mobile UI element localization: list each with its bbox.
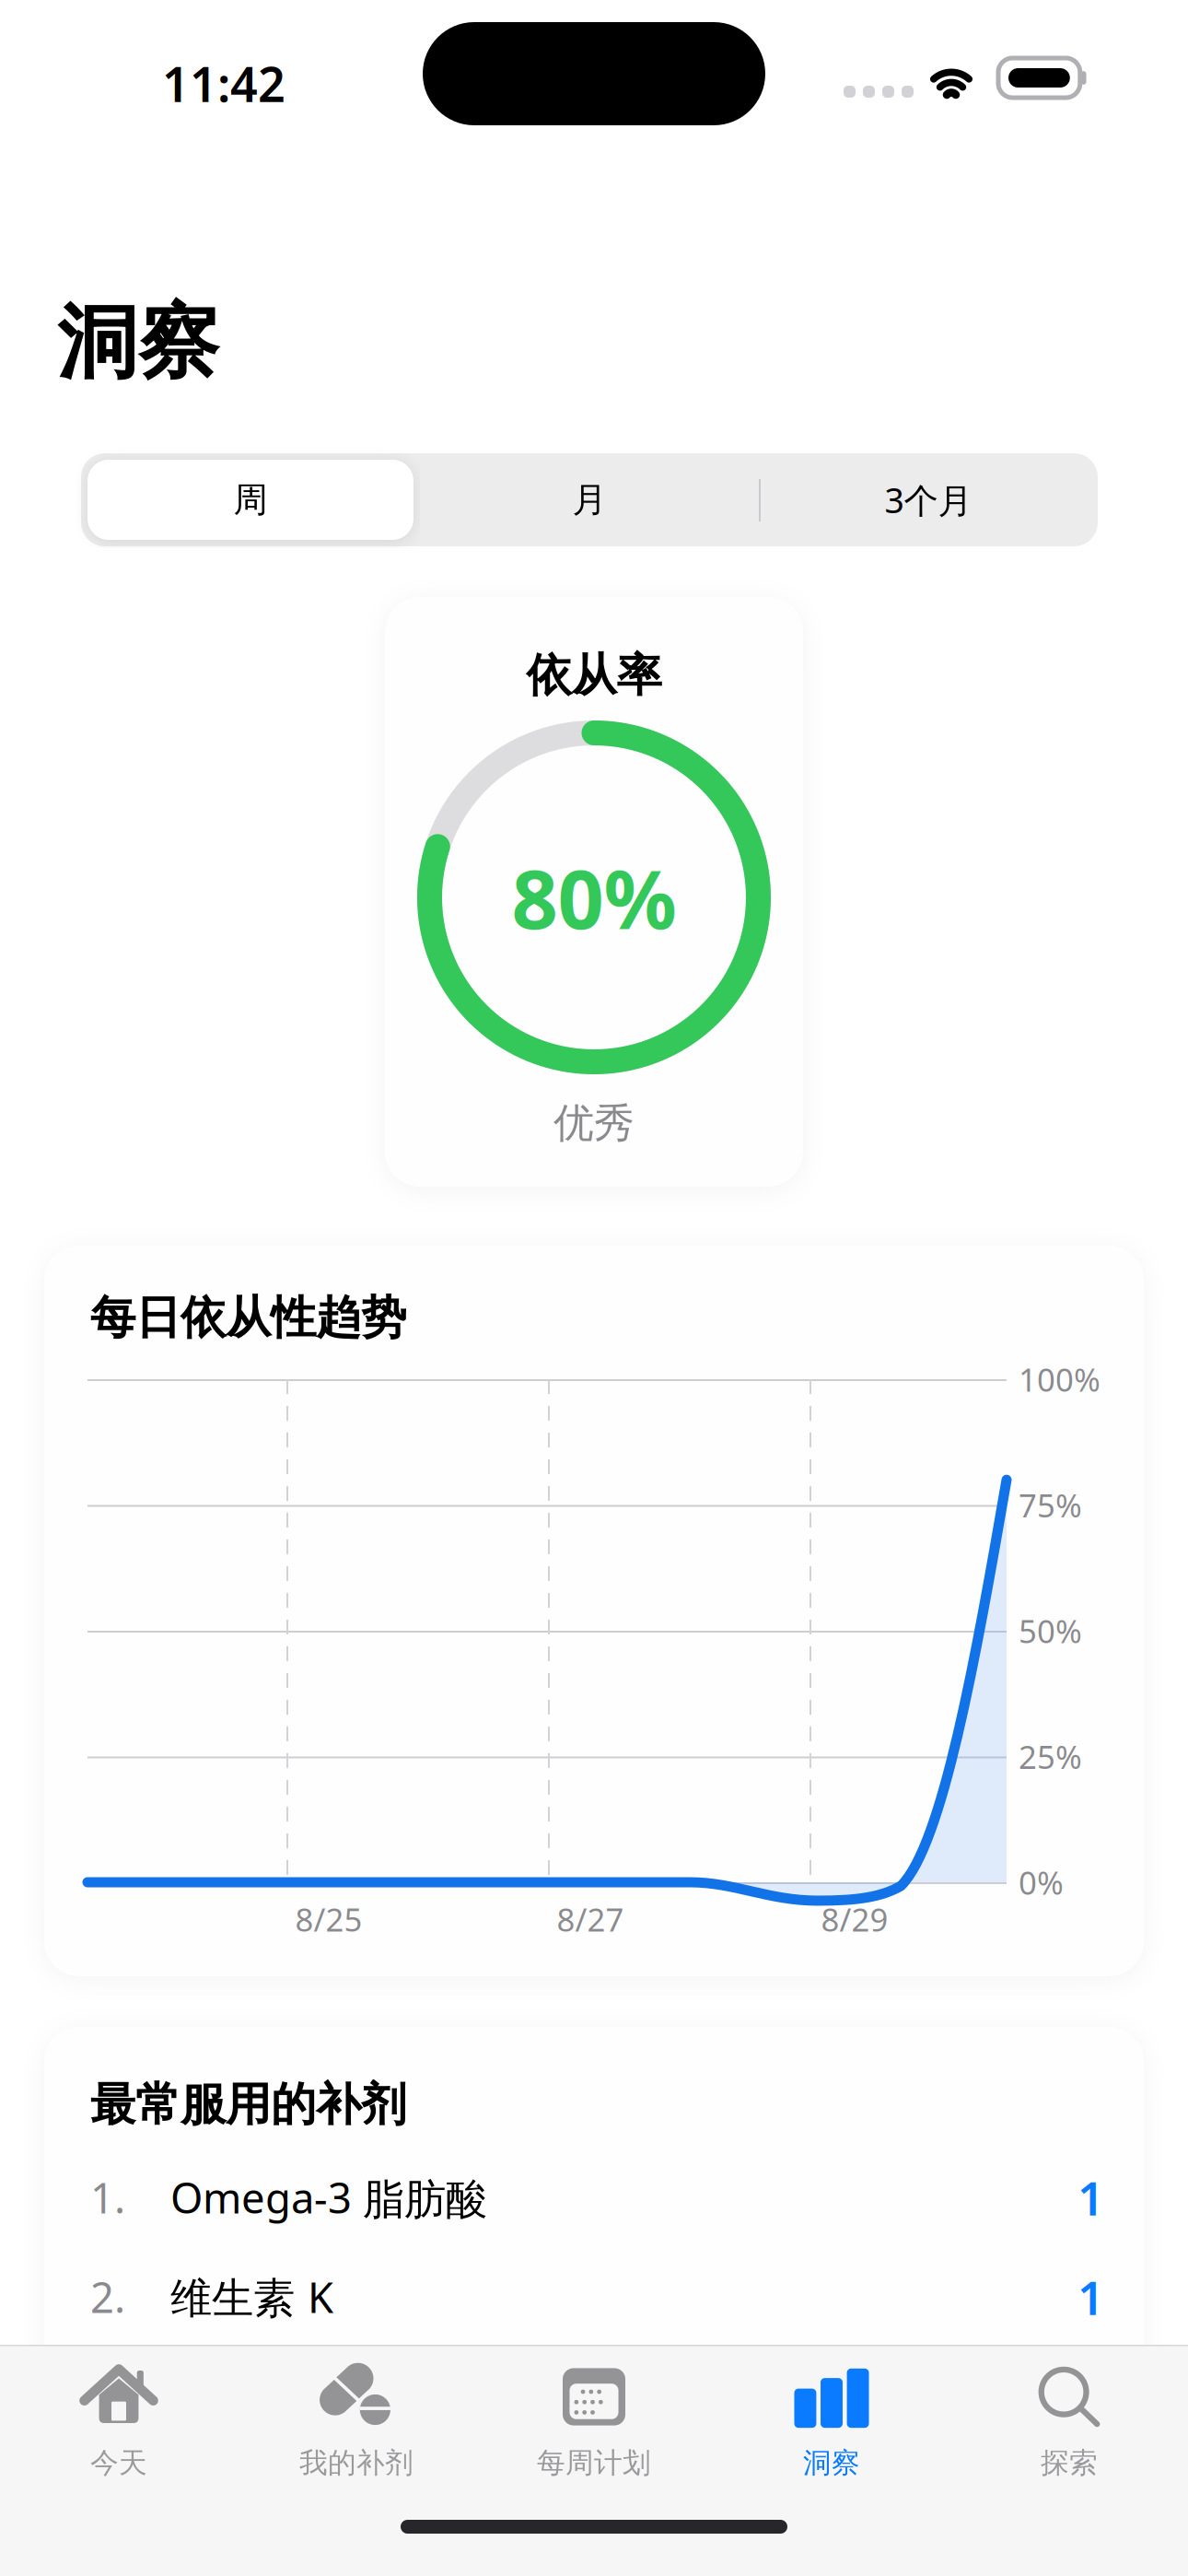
staticText: 依从率 [526, 647, 662, 703]
staticText: 最常服用的补剂 [90, 2077, 406, 2132]
staticText: 100% [1019, 1358, 1101, 1400]
staticText: 1 [1077, 2266, 1104, 2328]
staticText: 周 [233, 479, 268, 521]
staticText: 我的补剂 [299, 2446, 413, 2480]
button[interactable]: 3个月 [759, 453, 1098, 546]
button[interactable]: 每周计划 [475, 2363, 713, 2480]
staticText: 75% [1019, 1484, 1082, 1526]
button[interactable]: 我的补剂 [238, 2363, 475, 2480]
button[interactable]: 今天 [0, 2363, 238, 2480]
staticText: 25% [1019, 1735, 1082, 1778]
staticText: 8/27 [557, 1898, 624, 1940]
staticText: 每日依从性趋势 [90, 1290, 406, 1346]
staticText: 洞察 [803, 2446, 860, 2480]
button[interactable]: 月 [420, 453, 759, 546]
staticText: 11:42 [162, 52, 285, 115]
button[interactable]: 探索 [950, 2363, 1188, 2480]
staticText: 3个月 [885, 477, 972, 523]
staticText: 2. [90, 2269, 125, 2325]
staticText: 50% [1019, 1610, 1082, 1652]
staticText: 今天 [90, 2446, 147, 2480]
staticText: 维生素 K [170, 2269, 333, 2325]
button[interactable]: 洞察 [713, 2363, 950, 2480]
staticText: 洞察 [57, 293, 219, 393]
staticText: 月 [572, 479, 606, 521]
button[interactable]: 2. [44, 2263, 1144, 2331]
staticText: 8/29 [821, 1898, 888, 1940]
staticText: 80% [512, 844, 676, 951]
staticText: 优秀 [553, 1098, 635, 1148]
staticText: Omega-3 脂肪酸 [170, 2170, 487, 2225]
button[interactable]: 周 [81, 453, 420, 546]
staticText: 1. [90, 2170, 125, 2225]
staticText: 0% [1019, 1861, 1064, 1903]
staticText: 1 [1077, 2166, 1104, 2228]
staticText: 探索 [1041, 2446, 1098, 2480]
staticText: 每周计划 [537, 2446, 651, 2480]
staticText: 8/25 [295, 1898, 362, 1940]
button[interactable]: 1. [44, 2163, 1144, 2231]
